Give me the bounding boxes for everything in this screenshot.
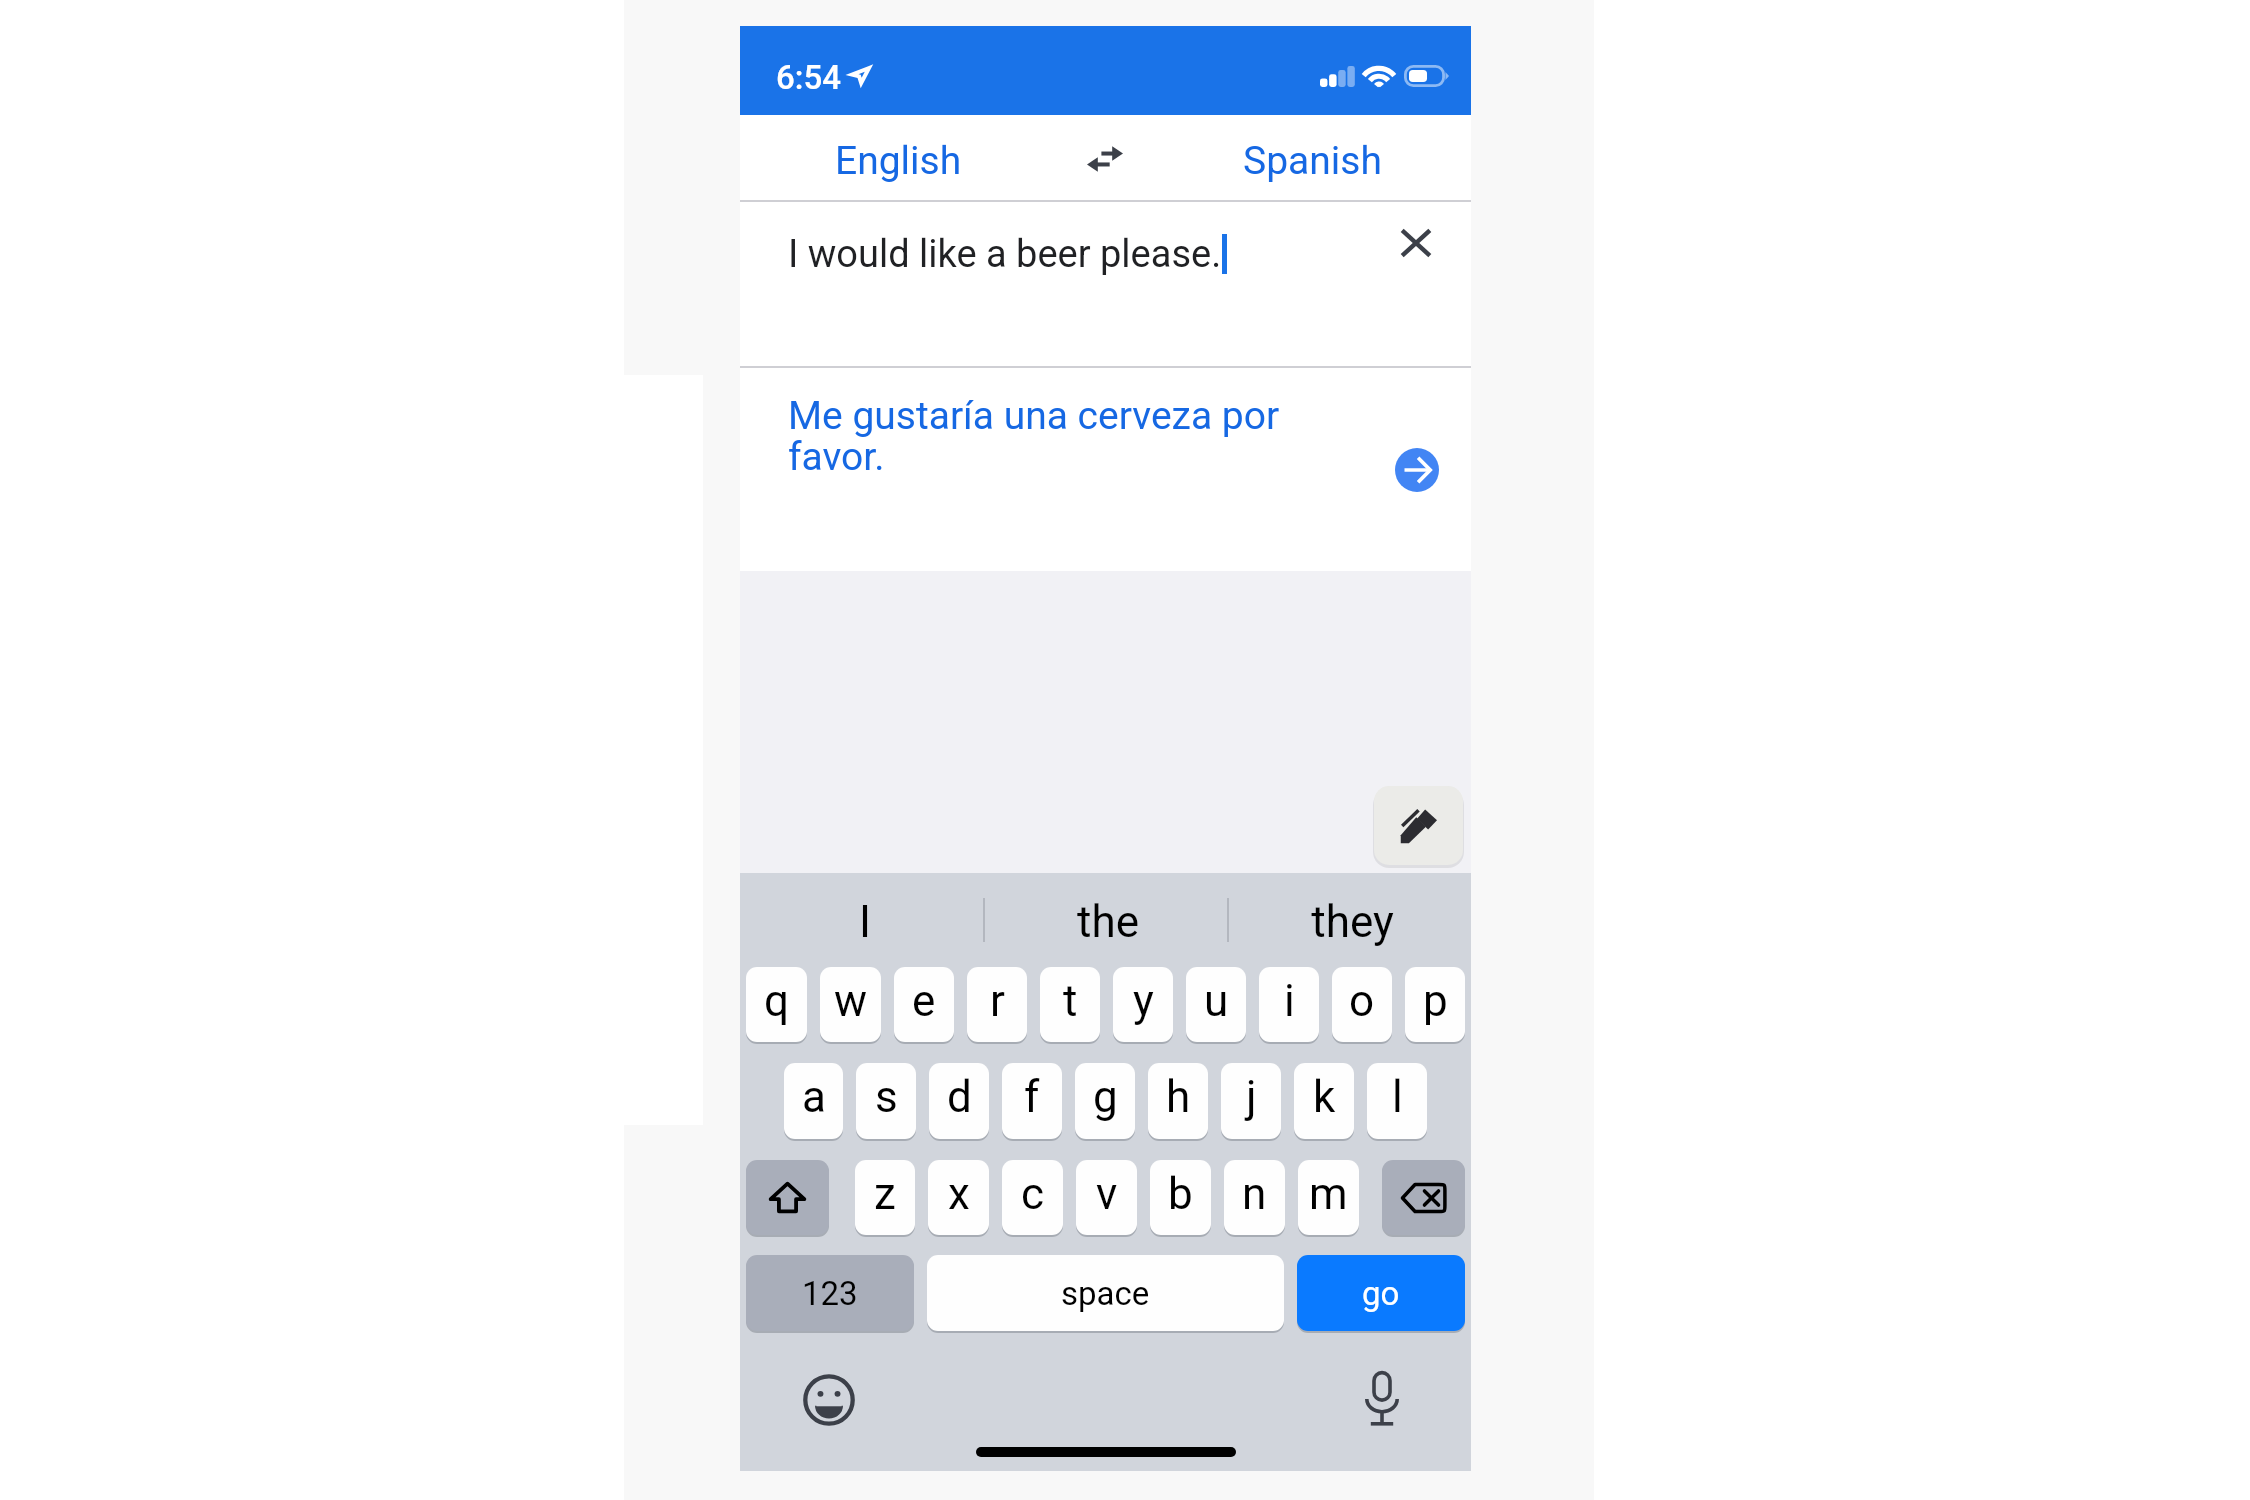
staticText: I would like a beer please. — [788, 232, 1222, 277]
staticText: n — [1242, 1168, 1267, 1220]
button[interactable]: k — [1294, 1063, 1354, 1139]
button[interactable]: g — [1075, 1063, 1135, 1139]
button[interactable]: Handwriting input — [1374, 786, 1463, 865]
button[interactable]: e — [894, 967, 954, 1042]
staticText: space — [1061, 1274, 1150, 1313]
staticText: i — [1284, 975, 1295, 1027]
button[interactable]: go — [1297, 1255, 1465, 1331]
staticText: I — [859, 896, 871, 948]
staticText: English — [835, 138, 962, 184]
staticText: p — [1423, 975, 1448, 1027]
staticText: l — [1392, 1071, 1403, 1123]
staticText: k — [1313, 1071, 1336, 1123]
button[interactable]: Clear text — [1386, 213, 1446, 273]
button[interactable]: n — [1224, 1160, 1285, 1235]
staticText: c — [1021, 1168, 1045, 1220]
button[interactable]: c — [1002, 1160, 1063, 1235]
button[interactable]: i — [1259, 967, 1319, 1042]
staticText: 6:54 — [776, 58, 841, 97]
staticText: w — [834, 975, 868, 1027]
button[interactable]: p — [1405, 967, 1465, 1042]
staticText: e — [912, 975, 936, 1027]
staticText: g — [1093, 1071, 1118, 1123]
staticText: y — [1133, 975, 1154, 1027]
button[interactable]: Emoji keyboard — [802, 1373, 856, 1427]
staticText: u — [1204, 975, 1229, 1027]
staticText: q — [764, 975, 790, 1027]
button[interactable]: o — [1332, 967, 1392, 1042]
staticText: go — [1362, 1274, 1400, 1313]
button[interactable]: j — [1221, 1063, 1281, 1139]
button[interactable]: s — [856, 1063, 916, 1139]
button[interactable]: the — [983, 873, 1227, 967]
staticText: j — [1246, 1071, 1257, 1123]
staticText: x — [948, 1168, 970, 1220]
button[interactable]: Dictate — [1353, 1369, 1411, 1427]
button[interactable]: v — [1076, 1160, 1137, 1235]
staticText: 123 — [802, 1274, 858, 1313]
button[interactable]: Shift — [746, 1160, 829, 1235]
staticText: s — [875, 1071, 898, 1123]
button[interactable]: b — [1150, 1160, 1211, 1235]
button[interactable]: they — [1227, 873, 1471, 967]
staticText: b — [1168, 1168, 1193, 1220]
button[interactable]: d — [929, 1063, 989, 1139]
staticText: they — [1311, 896, 1394, 948]
staticText: z — [874, 1168, 896, 1220]
button[interactable]: English — [740, 115, 1049, 202]
staticText: the — [1077, 896, 1139, 948]
staticText: a — [802, 1071, 826, 1123]
button[interactable]: Spanish — [1161, 115, 1471, 202]
button[interactable]: Open translation — [1395, 448, 1439, 492]
button[interactable]: h — [1148, 1063, 1208, 1139]
staticText: h — [1166, 1071, 1191, 1123]
button[interactable]: space — [927, 1255, 1284, 1331]
button[interactable]: q — [746, 967, 807, 1042]
button[interactable]: r — [967, 967, 1027, 1042]
staticText: t — [1063, 975, 1078, 1027]
button[interactable]: Backspace — [1382, 1160, 1465, 1235]
button[interactable]: t — [1040, 967, 1100, 1042]
button[interactable]: z — [855, 1160, 915, 1235]
button[interactable]: x — [928, 1160, 989, 1235]
button[interactable]: a — [784, 1063, 843, 1139]
button[interactable]: w — [820, 967, 881, 1042]
staticText: d — [947, 1071, 972, 1123]
staticText: v — [1096, 1168, 1118, 1220]
button[interactable]: 123 — [746, 1255, 914, 1331]
button[interactable]: y — [1113, 967, 1173, 1042]
staticText: o — [1349, 975, 1375, 1027]
button[interactable]: m — [1298, 1160, 1359, 1235]
button[interactable]: I — [740, 873, 983, 967]
button[interactable]: l — [1367, 1063, 1427, 1139]
staticText: Me gustaría una cerveza por favor. — [788, 393, 1293, 479]
staticText: r — [990, 975, 1005, 1027]
staticText: f — [1024, 1071, 1040, 1123]
staticText: m — [1309, 1168, 1348, 1220]
button[interactable]: u — [1186, 967, 1246, 1042]
staticText: Spanish — [1243, 138, 1382, 184]
button[interactable]: Swap languages — [1049, 115, 1161, 202]
button[interactable]: f — [1002, 1063, 1062, 1139]
